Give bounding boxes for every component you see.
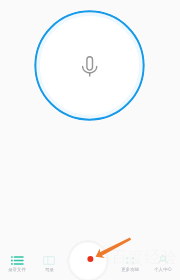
button[interactable]: Voice input bbox=[34, 10, 145, 121]
button[interactable]: 写录 bbox=[33, 252, 65, 276]
staticText: 个人中心 bbox=[154, 267, 172, 273]
staticText: 更多功能 bbox=[121, 267, 139, 273]
button[interactable]: 录音文件 bbox=[1, 252, 33, 276]
button[interactable]: 更多功能 bbox=[114, 252, 146, 276]
staticText: 百度经验 bbox=[111, 248, 178, 268]
button[interactable]: Start recording bbox=[67, 240, 109, 280]
staticText: 录音文件 bbox=[8, 267, 26, 273]
staticText: 写录 bbox=[45, 267, 54, 273]
button[interactable]: 个人中心 bbox=[147, 252, 179, 276]
